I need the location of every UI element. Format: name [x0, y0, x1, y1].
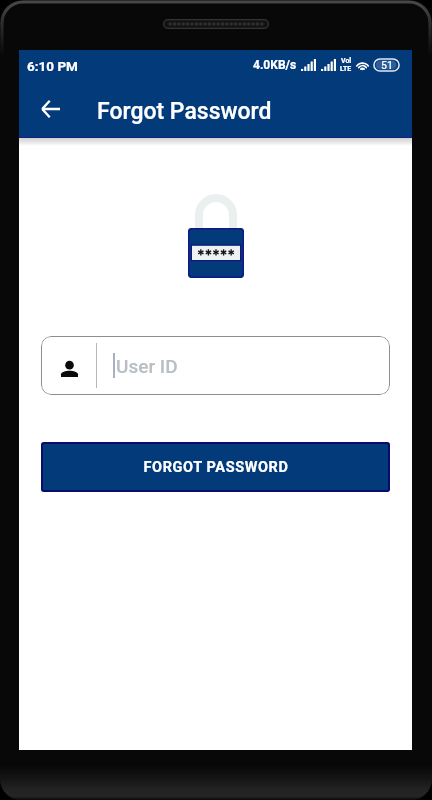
staticText: Forgot Password [97, 98, 272, 125]
staticText: 6:10 PM [27, 58, 78, 74]
staticText: FORGOT PASSWORD [143, 459, 289, 476]
button[interactable]: User ID [41, 336, 390, 395]
button[interactable]: Back [30, 89, 70, 129]
staticText: 4.0KB/s [253, 58, 297, 72]
staticText: 51 [381, 59, 393, 71]
staticText: Vol [341, 57, 352, 65]
staticText: User ID [116, 355, 178, 377]
staticText: LTE [340, 65, 352, 73]
button[interactable]: FORGOT PASSWORD [41, 442, 390, 492]
